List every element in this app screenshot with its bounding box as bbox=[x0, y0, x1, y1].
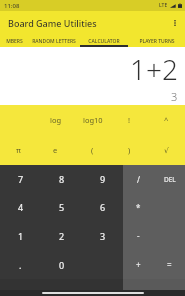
button[interactable]: ^ bbox=[148, 105, 185, 135]
button[interactable]: 5 bbox=[41, 193, 82, 221]
staticText: Board Game Utilities bbox=[8, 17, 97, 29]
staticText: 1+2 bbox=[130, 50, 178, 88]
staticText: ! bbox=[128, 115, 131, 125]
button[interactable]: 4 bbox=[0, 193, 41, 221]
button[interactable]: 1 bbox=[0, 221, 41, 250]
button[interactable]: PLAYER TURNS bbox=[129, 35, 185, 47]
staticText: PLAYER TURNS bbox=[139, 38, 175, 45]
staticText: . bbox=[19, 259, 22, 271]
staticText: 8 bbox=[59, 173, 65, 185]
staticText: 3 bbox=[171, 89, 178, 104]
button[interactable]: log bbox=[37, 105, 74, 135]
staticText: - bbox=[137, 230, 140, 241]
button[interactable]: 9 bbox=[82, 165, 123, 193]
button[interactable]: 3 bbox=[82, 221, 123, 250]
staticText: e bbox=[53, 145, 58, 155]
button[interactable]: ( bbox=[74, 135, 111, 165]
button[interactable]: 8 bbox=[41, 165, 82, 193]
staticText: 3 bbox=[100, 230, 106, 242]
staticText: 0 bbox=[59, 259, 65, 271]
staticText: MBERS bbox=[6, 38, 23, 45]
staticText: 6 bbox=[100, 201, 106, 213]
staticText: 1 bbox=[18, 230, 24, 242]
button[interactable]: = bbox=[154, 250, 185, 279]
staticText: 2 bbox=[59, 230, 65, 242]
button[interactable]: √ bbox=[148, 135, 185, 165]
staticText: √ bbox=[164, 146, 169, 155]
button[interactable]: 2 bbox=[41, 221, 82, 250]
button[interactable]: + bbox=[123, 250, 154, 279]
staticText: 9 bbox=[100, 173, 106, 185]
button[interactable]: 7 bbox=[0, 165, 41, 193]
button[interactable]: . bbox=[0, 250, 41, 279]
button[interactable]: * bbox=[123, 193, 154, 221]
button[interactable]: 0 bbox=[41, 250, 82, 279]
button[interactable]: MBERS bbox=[0, 35, 29, 47]
staticText: ^ bbox=[164, 115, 169, 125]
button[interactable]: π bbox=[0, 135, 37, 165]
staticText: ( bbox=[91, 145, 94, 155]
staticText: 4 bbox=[18, 201, 24, 213]
button[interactable]: log10 bbox=[74, 105, 111, 135]
staticText: RANDOM LETTERS bbox=[32, 38, 76, 45]
button[interactable]: / bbox=[123, 165, 154, 193]
button[interactable]: ) bbox=[111, 135, 148, 165]
staticText: ) bbox=[128, 145, 131, 155]
staticText: log bbox=[50, 115, 62, 125]
button[interactable]: CALCULATOR bbox=[79, 35, 129, 47]
staticText: 7 bbox=[18, 173, 24, 185]
button[interactable]: DEL bbox=[154, 165, 185, 193]
button[interactable]: ! bbox=[111, 105, 148, 135]
staticText: + bbox=[136, 259, 141, 270]
staticText: 5 bbox=[59, 201, 65, 213]
staticText: log10 bbox=[83, 115, 103, 125]
button[interactable]: e bbox=[37, 135, 74, 165]
staticText: LTE bbox=[159, 2, 168, 9]
button[interactable]: RANDOM LETTERS bbox=[29, 35, 79, 47]
button[interactable]: 6 bbox=[82, 193, 123, 221]
staticText: / bbox=[137, 174, 140, 185]
staticText: π bbox=[16, 145, 21, 155]
staticText: 11:08 bbox=[4, 2, 20, 10]
staticText: DEL bbox=[164, 175, 176, 184]
button[interactable]: More options bbox=[165, 13, 185, 33]
button[interactable]: - bbox=[123, 221, 154, 250]
staticText: * bbox=[136, 202, 141, 213]
staticText: = bbox=[167, 259, 172, 270]
staticText: CALCULATOR bbox=[88, 38, 120, 45]
